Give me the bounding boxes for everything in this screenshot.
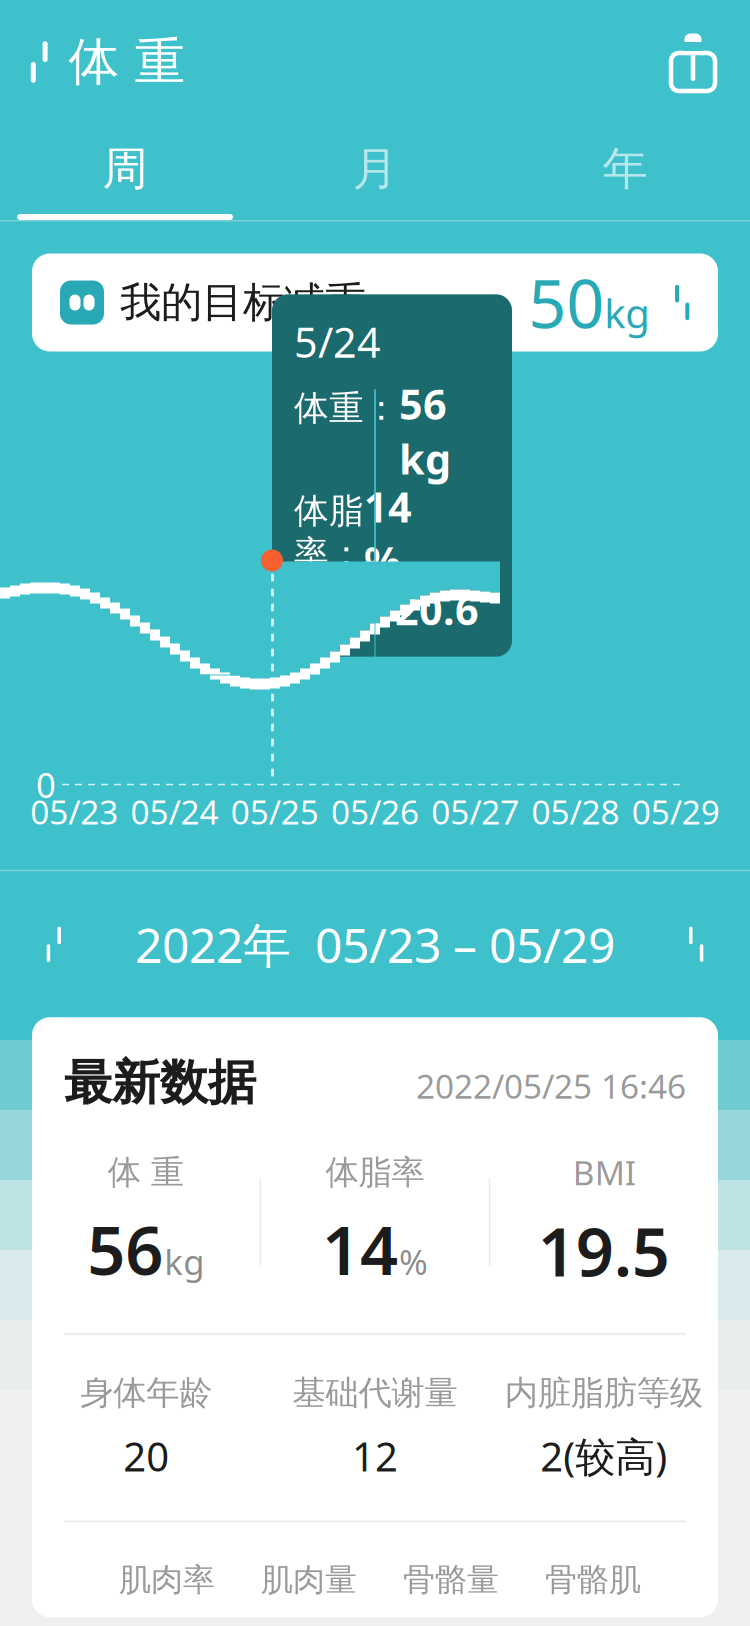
staticText: 我的目标减重： — [120, 277, 407, 328]
staticText: 身体年龄 — [80, 1372, 212, 1413]
staticText: 12 — [352, 1429, 398, 1483]
staticText: 体脂率： — [294, 490, 364, 575]
button[interactable]: 月 — [250, 124, 500, 220]
staticText: 20 — [123, 1429, 169, 1483]
staticText: 50 — [528, 258, 604, 347]
staticText: 2022年 05/23 – 05/29 — [135, 912, 615, 976]
button[interactable]: 上一周 — [0, 901, 108, 987]
staticText: 体重： — [294, 387, 399, 429]
staticText: kg — [164, 1238, 204, 1284]
staticText: 年 — [602, 141, 647, 197]
staticText: 0 — [36, 761, 56, 807]
button[interactable]: 分享 — [666, 25, 750, 99]
staticText: 2(较高) — [540, 1429, 667, 1483]
staticText: 骨骼肌 — [545, 1560, 641, 1599]
staticText: 56.0kg — [545, 1615, 659, 1626]
staticText: 20.0% — [119, 1615, 222, 1626]
staticText: 05/25 — [231, 789, 319, 834]
staticText: kg — [604, 286, 650, 339]
staticText: 05/28 — [532, 789, 620, 834]
staticText: 最新数据 — [64, 1053, 256, 1112]
staticText: BMI： — [294, 589, 395, 635]
button[interactable]: 返回 — [0, 17, 185, 107]
staticText: 肌肉量 — [261, 1560, 357, 1599]
staticText: 19.5 — [538, 1206, 670, 1295]
staticText: 56kg — [399, 376, 451, 486]
staticText: 05/26 — [331, 789, 419, 834]
staticText: 体 重 — [68, 31, 185, 93]
staticText: 体脂率 — [325, 1152, 424, 1193]
staticText: 20.6 — [395, 582, 479, 637]
staticText: 56.00kg — [261, 1615, 396, 1626]
staticText: 56.00kg — [403, 1615, 538, 1626]
staticText: 05/23 — [30, 789, 118, 834]
staticText: 14% — [364, 479, 412, 589]
staticText: 14 — [322, 1205, 398, 1293]
button[interactable]: 下一周 — [642, 901, 750, 987]
staticText: 2022/05/25 16:46 — [416, 1064, 686, 1108]
staticText: 基础代谢量 — [292, 1372, 457, 1413]
staticText: 内脏脂肪等级 — [505, 1372, 703, 1413]
staticText: 月 — [352, 141, 397, 197]
staticText: 5/24 — [294, 314, 381, 369]
staticText: 体 重 — [108, 1152, 184, 1193]
staticText: 05/27 — [431, 789, 519, 834]
staticText: % — [399, 1238, 428, 1284]
staticText: BMI — [573, 1150, 636, 1194]
staticText: 56 — [87, 1205, 163, 1293]
button[interactable]: 年 — [500, 124, 750, 220]
staticText: 骨骼量 — [403, 1560, 499, 1599]
staticText: 肌肉率 — [119, 1560, 215, 1599]
staticText: 05/24 — [130, 789, 218, 834]
staticText: 05/29 — [632, 789, 720, 834]
button[interactable]: 我的目标减重： — [32, 253, 718, 351]
staticText: 周 — [102, 141, 147, 197]
button[interactable]: 周 — [0, 124, 250, 220]
